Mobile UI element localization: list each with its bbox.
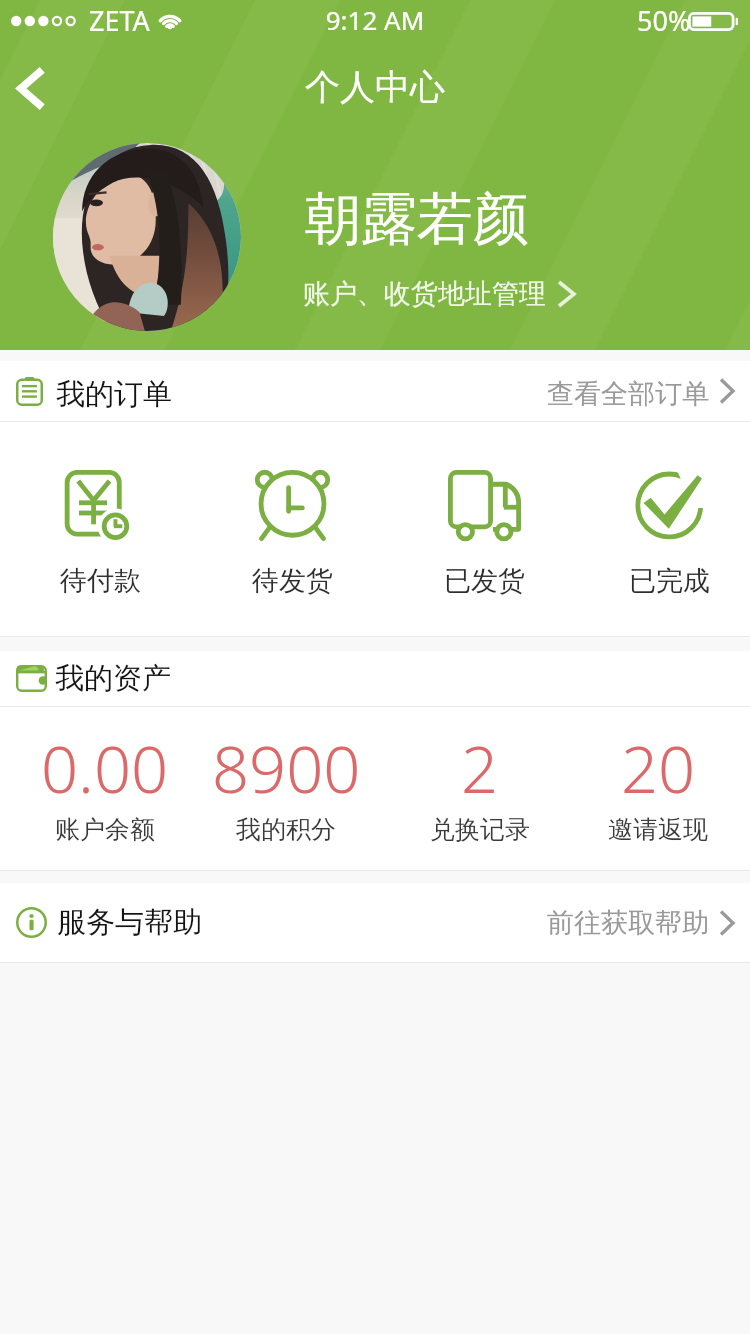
staticText: 20 bbox=[621, 724, 696, 813]
staticText: ZETA bbox=[89, 2, 150, 39]
staticText: 待发货 bbox=[252, 564, 333, 598]
staticText: 邀请返现 bbox=[608, 814, 708, 845]
staticText: 50% bbox=[637, 2, 691, 39]
button[interactable]: 20 bbox=[568, 707, 748, 870]
staticText: 我的订单 bbox=[56, 376, 172, 413]
staticText: 前往获取帮助 bbox=[547, 906, 709, 940]
staticText: 9:12 AM bbox=[0, 2, 750, 37]
button[interactable] bbox=[53, 143, 241, 331]
button[interactable]: 服务与帮助 bbox=[0, 883, 750, 962]
button[interactable]: Back bbox=[3, 60, 59, 116]
staticText: 8900 bbox=[212, 724, 361, 813]
button[interactable]: 我的订单 bbox=[0, 361, 750, 421]
staticText: 已发货 bbox=[444, 564, 525, 598]
button[interactable]: 已发货 bbox=[409, 422, 559, 636]
button[interactable]: 朝露若颜 bbox=[305, 184, 529, 255]
staticText: 查看全部订单 bbox=[547, 377, 709, 411]
button[interactable]: 待发货 bbox=[217, 422, 367, 636]
staticText: 我的资产 bbox=[55, 660, 171, 697]
button[interactable]: 待付款 bbox=[25, 422, 175, 636]
staticText: 个人中心 bbox=[0, 65, 750, 109]
button[interactable]: 8900 bbox=[196, 707, 376, 870]
staticText: 0.00 bbox=[41, 724, 169, 813]
staticText: 我的积分 bbox=[236, 814, 336, 845]
staticText: 账户、收货地址管理 bbox=[303, 277, 546, 311]
staticText: 服务与帮助 bbox=[57, 904, 202, 941]
button[interactable]: 我的资产 bbox=[0, 651, 750, 706]
staticText: 已完成 bbox=[629, 564, 710, 598]
button[interactable]: 已完成 bbox=[594, 422, 744, 636]
staticText: 2 bbox=[461, 724, 499, 813]
staticText: 账户余额 bbox=[55, 814, 155, 845]
staticText: 待付款 bbox=[60, 564, 141, 598]
button[interactable]: 2 bbox=[390, 707, 570, 870]
button[interactable]: 账户、收货地址管理 bbox=[303, 277, 576, 311]
button[interactable]: 0.00 bbox=[15, 707, 195, 870]
staticText: 兑换记录 bbox=[430, 814, 530, 845]
